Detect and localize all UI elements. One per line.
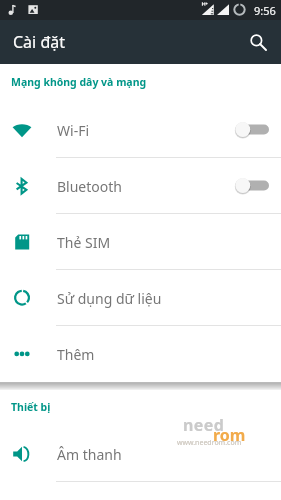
button[interactable]: Sử dụng dữ liệu (0, 270, 281, 326)
staticText: Wi-Fi (57, 121, 90, 140)
button[interactable]: Thêm (0, 326, 281, 382)
staticText: rom (213, 424, 246, 446)
staticText: Thẻ SIM (57, 233, 111, 252)
button[interactable]: Thẻ SIM (0, 214, 281, 270)
staticText: Âm thanh (57, 445, 122, 464)
staticText: Cài đặt (13, 31, 66, 53)
button[interactable]: Bluetooth (0, 158, 281, 214)
staticText: Sử dụng dữ liệu (57, 289, 162, 308)
staticText: Bluetooth (57, 177, 122, 196)
staticText: Mạng không dây và mạng (11, 75, 147, 89)
staticText: 9:56 (254, 3, 276, 18)
button[interactable]: Wi-Fi (0, 102, 281, 158)
staticText: www.needrom.com (177, 438, 242, 448)
staticText: need (183, 414, 225, 436)
button[interactable]: Search (241, 25, 275, 59)
button[interactable]: Âm thanh (0, 426, 281, 482)
staticText: Thêm (57, 345, 95, 364)
staticText: Thiết bị (11, 400, 51, 414)
